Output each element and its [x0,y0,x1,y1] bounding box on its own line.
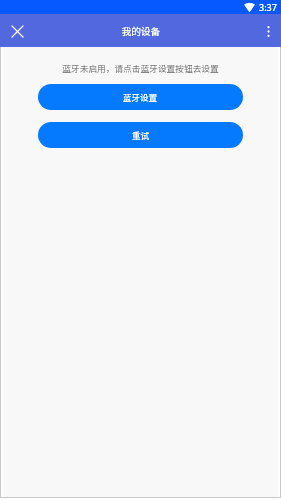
button[interactable]: Close [6,20,28,42]
button[interactable]: More options [257,20,279,42]
staticText: 3:37 [259,1,277,13]
staticText: 我的设备 [122,24,161,38]
staticText: 蓝牙未启用，请点击蓝牙设置按钮去设置 [0,62,281,75]
staticText: 重试 [132,129,150,141]
button[interactable]: 蓝牙设置 [38,84,243,110]
staticText: 蓝牙设置 [123,91,158,103]
button[interactable]: 重试 [38,122,243,148]
